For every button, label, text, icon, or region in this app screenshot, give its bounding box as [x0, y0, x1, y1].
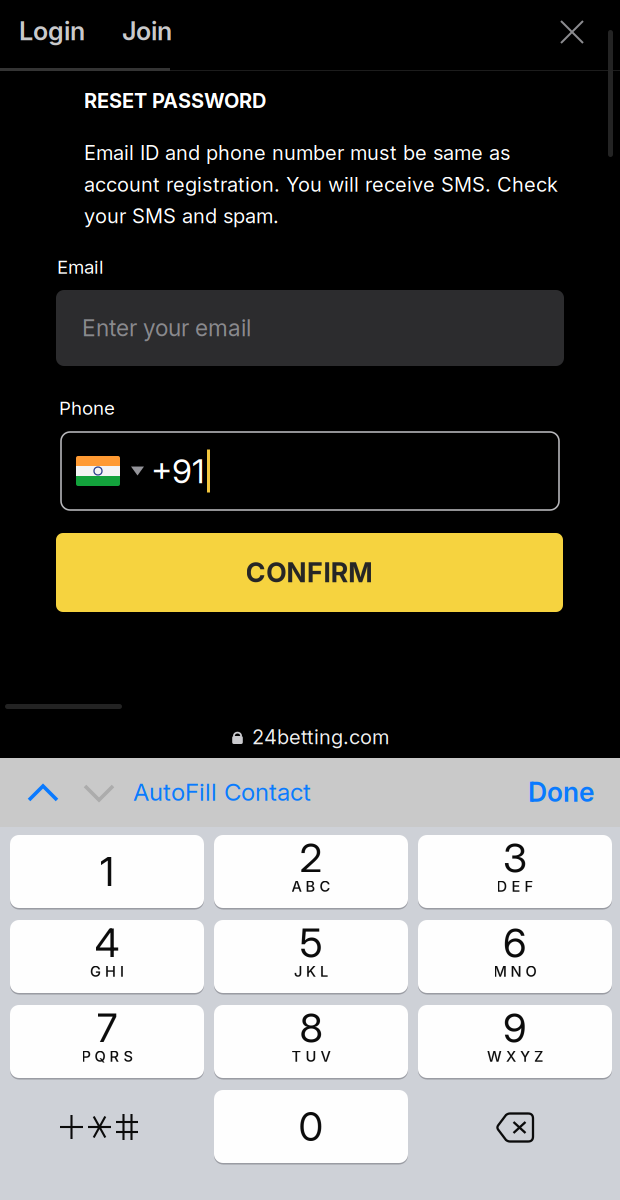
- button[interactable]: 6: [418, 921, 612, 994]
- staticText: A B C: [291, 878, 330, 895]
- staticText: 6: [503, 919, 527, 966]
- button[interactable]: 0: [214, 1091, 408, 1164]
- staticText: 1: [99, 848, 114, 895]
- button[interactable]: +91: [61, 432, 559, 510]
- staticText: 24betting.com: [252, 725, 389, 749]
- button[interactable]: 3: [418, 836, 612, 909]
- button[interactable]: Enter your email: [56, 290, 564, 366]
- staticText: G H I: [90, 963, 124, 980]
- button[interactable]: 4: [10, 921, 204, 994]
- button[interactable]: Previous field: [14, 777, 72, 809]
- staticText: 2: [299, 834, 322, 881]
- button[interactable]: Delete: [418, 1091, 612, 1164]
- staticText: +91: [151, 451, 205, 491]
- staticText: CONFIRM: [246, 557, 373, 588]
- staticText: account registration. You will receive S…: [84, 173, 558, 196]
- staticText: W X Y Z: [487, 1048, 543, 1065]
- staticText: 5: [299, 919, 322, 966]
- button[interactable]: 1: [10, 836, 204, 909]
- button[interactable]: AutoFill Contact: [133, 775, 353, 809]
- staticText: 8: [299, 1004, 322, 1051]
- staticText: Email ID and phone number must be same a…: [84, 141, 510, 165]
- staticText: 4: [94, 919, 119, 966]
- button[interactable]: Done: [470, 775, 594, 809]
- staticText: 0: [298, 1103, 323, 1150]
- staticText: Phone: [59, 397, 115, 419]
- staticText: T U V: [291, 1048, 330, 1065]
- button[interactable]: 2: [214, 836, 408, 909]
- staticText: D E F: [496, 878, 533, 895]
- staticText: 3: [503, 834, 527, 881]
- staticText: Join: [122, 16, 172, 46]
- button[interactable]: 9: [418, 1006, 612, 1079]
- staticText: 9: [503, 1004, 527, 1051]
- staticText: Done: [528, 776, 594, 808]
- staticText: your SMS and spam.: [84, 204, 279, 228]
- staticText: M N O: [493, 963, 536, 980]
- staticText: Enter your email: [82, 315, 251, 341]
- button[interactable]: Join: [122, 12, 192, 50]
- button[interactable]: Login: [19, 12, 99, 50]
- staticText: 7: [96, 1004, 117, 1051]
- staticText: J K L: [294, 963, 328, 980]
- button[interactable]: 7: [10, 1006, 204, 1079]
- staticText: Login: [19, 16, 85, 46]
- button[interactable]: Symbols: [10, 1091, 204, 1164]
- button[interactable]: Next field: [70, 777, 128, 809]
- button[interactable]: CONFIRM: [56, 533, 563, 612]
- staticText: RESET PASSWORD: [84, 89, 266, 113]
- staticText: AutoFill Contact: [133, 778, 311, 806]
- staticText: Email: [57, 256, 104, 278]
- button[interactable]: 8: [214, 1006, 408, 1079]
- staticText: P Q R S: [81, 1048, 132, 1065]
- button[interactable]: Close: [546, 7, 598, 57]
- button[interactable]: 5: [214, 921, 408, 994]
